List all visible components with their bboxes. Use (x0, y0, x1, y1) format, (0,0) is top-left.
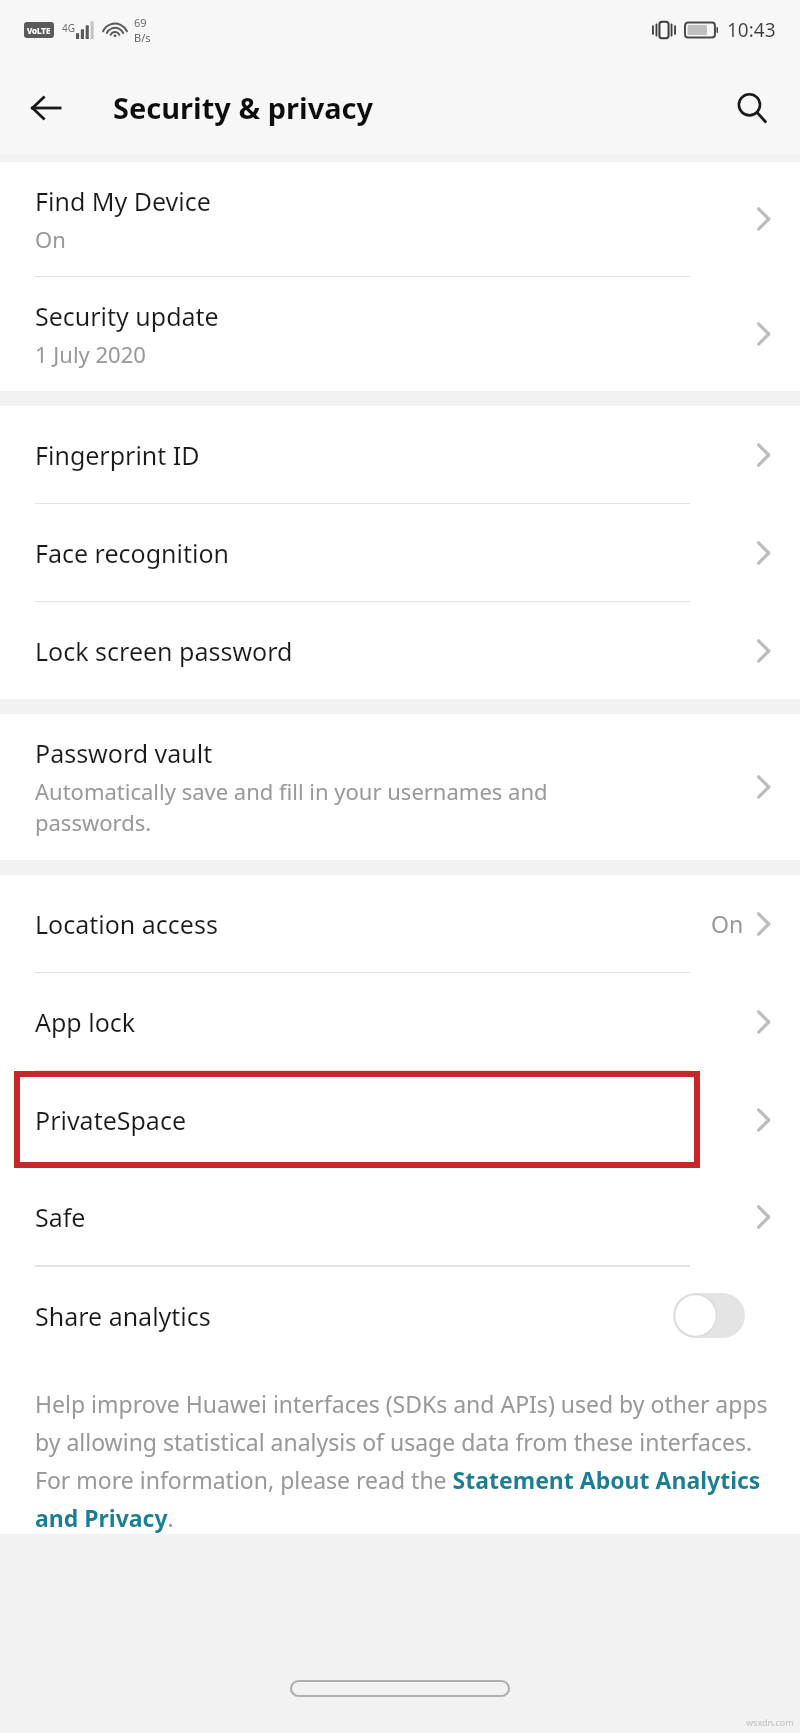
staticText: Automatically save and fill in your user… (35, 776, 548, 838)
staticText: Fingerprint ID (35, 438, 752, 472)
staticText: wsxdn.com (746, 1716, 794, 1728)
button[interactable]: Lock screen password (0, 602, 800, 699)
staticText: On (35, 224, 66, 254)
button[interactable]: Password vault (0, 714, 800, 860)
staticText: Password vault (35, 736, 213, 770)
staticText: Security update (35, 299, 219, 333)
staticText: Lock screen password (35, 634, 752, 668)
staticText: Location access (35, 907, 711, 941)
button[interactable]: Share analytics toggle (673, 1293, 745, 1338)
staticText: On (711, 908, 744, 939)
staticText: App lock (35, 1005, 752, 1039)
staticText: Help improve Huawei interfaces (SDKs and… (35, 1388, 772, 1534)
staticText: 69 (134, 15, 147, 30)
staticText: 10:43 (727, 17, 776, 43)
staticText: 1 July 2020 (35, 339, 146, 369)
staticText: Security & privacy (113, 88, 374, 127)
button[interactable]: Search (724, 80, 780, 136)
button[interactable]: Fingerprint ID (0, 406, 800, 503)
staticText: Share analytics (35, 1299, 673, 1333)
button[interactable]: Find My Device (0, 162, 800, 276)
button[interactable]: Back (18, 80, 74, 136)
button[interactable]: Safe (0, 1168, 800, 1265)
staticText: Find My Device (35, 184, 211, 218)
staticText: 4G (62, 21, 75, 35)
staticText: Safe (35, 1200, 752, 1234)
button[interactable]: Share analytics (0, 1267, 800, 1364)
button[interactable]: Face recognition (0, 504, 800, 601)
button[interactable]: Security update (0, 277, 800, 391)
button[interactable]: Location access (0, 875, 800, 972)
staticText: VoLTE (27, 25, 51, 36)
button[interactable]: App lock (0, 973, 800, 1070)
staticText: PrivateSpace (35, 1103, 752, 1137)
staticText: B/s (134, 30, 151, 45)
button[interactable]: PrivateSpace (0, 1071, 800, 1168)
staticText: Face recognition (35, 536, 752, 570)
